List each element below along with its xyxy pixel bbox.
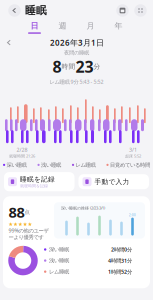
button[interactable]: 週: [48, 20, 76, 35]
button[interactable]: 月: [76, 20, 104, 35]
staticText: 2:00: [129, 213, 136, 217]
staticText: 分: [93, 62, 100, 71]
staticText: 3/1: [129, 146, 137, 153]
staticText: 2026年3月1日: [50, 37, 104, 48]
staticText: 手動で入力: [94, 178, 129, 186]
staticText: ーより優秀です: [8, 234, 43, 241]
staticText: 浅い睡眠: [49, 257, 69, 264]
staticText: レム睡眠: [49, 268, 69, 275]
staticText: 深い睡眠: [7, 162, 27, 168]
staticText: 1時間52分: [108, 268, 132, 275]
staticText: 4時間31分: [108, 257, 132, 264]
staticText: 月: [86, 21, 94, 31]
button[interactable]: 手動で入力: [78, 174, 149, 189]
button[interactable]: カレンダー: [115, 3, 130, 18]
staticText: レム睡眠 9分 5:43 - 5:52: [49, 78, 103, 85]
staticText: 8: [52, 56, 61, 77]
staticText: 浅い睡眠: [41, 162, 61, 168]
staticText: 就寝時間 21:26: [9, 153, 35, 159]
staticText: 就寝時間を記録: [20, 183, 48, 188]
staticText: 睡眠を記録: [20, 175, 55, 183]
button[interactable]: 年: [104, 20, 132, 35]
staticText: 年: [114, 21, 122, 31]
staticText: 99%の他のユーザ: [8, 227, 48, 234]
staticText: 2時間0分: [111, 246, 132, 253]
button[interactable]: 睡眠: [0, 2, 53, 19]
staticText: 時間: [61, 62, 75, 71]
staticText: 2/28: [16, 146, 27, 153]
staticText: レム睡眠: [75, 162, 95, 168]
staticText: 深い睡眠: [49, 246, 69, 253]
staticText: 深い睡眠の推移 (2/23-3/1): [61, 205, 105, 211]
staticText: 点: [24, 209, 29, 215]
button[interactable]: その他: [133, 3, 148, 18]
button[interactable]: 前の日: [0, 37, 18, 48]
staticText: 週: [58, 21, 66, 31]
staticText: 日: [30, 21, 38, 31]
button[interactable]: 睡眠を記録: [4, 172, 74, 191]
staticText: 88: [8, 202, 24, 222]
staticText: 23: [75, 56, 93, 77]
staticText: 起床 5:52: [125, 153, 141, 159]
button[interactable]: 日: [20, 20, 48, 35]
staticText: 睡眠: [25, 4, 47, 17]
staticText: 目覚めている時間: [110, 162, 150, 168]
staticText: 夜間の睡眠: [64, 49, 89, 56]
